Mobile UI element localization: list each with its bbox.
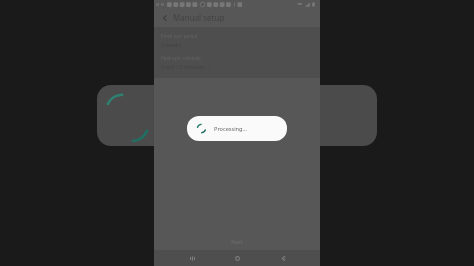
staticText: Processing...: [214, 125, 248, 133]
button[interactable]: Recent apps: [184, 250, 200, 266]
button[interactable]: Processing...: [187, 116, 287, 141]
button[interactable]: Back: [275, 250, 291, 266]
staticText: Manual setup: [173, 12, 225, 23]
button[interactable]: Home: [229, 250, 245, 266]
button[interactable]: Back: [158, 11, 171, 24]
staticText: Next: [230, 239, 244, 246]
staticText: Peak sync schedule: [161, 55, 201, 61]
staticText: Email sync period: [161, 33, 198, 39]
